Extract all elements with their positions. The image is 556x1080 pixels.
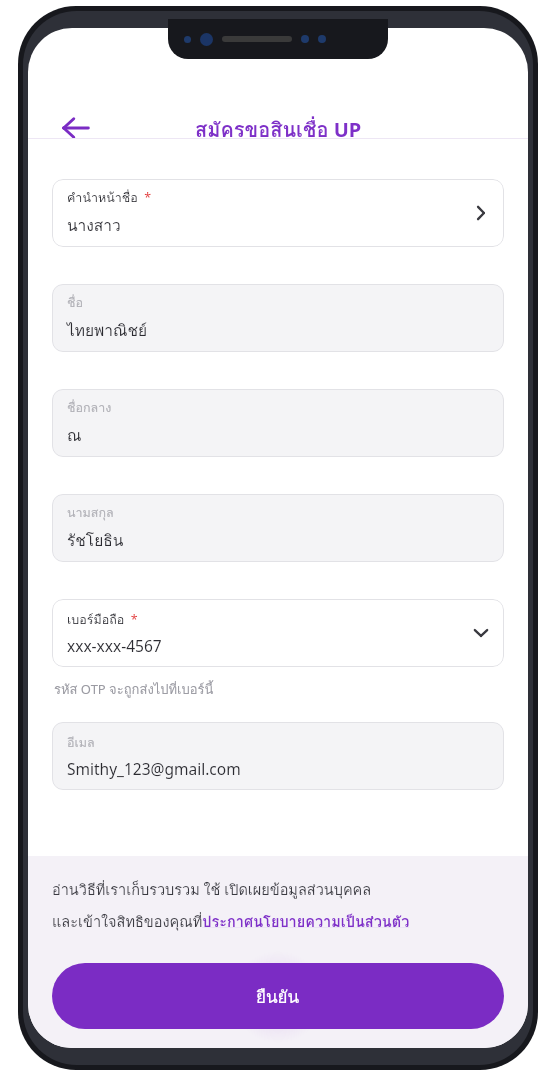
staticText: นามสกุล [67, 503, 114, 523]
staticText: รหัส OTP จะถูกส่งไปที่เบอร์นี้ [54, 679, 214, 700]
button[interactable]: นามสกุล [52, 494, 504, 562]
button[interactable]: ชื่อกลาง [52, 389, 504, 457]
button[interactable]: Back [54, 106, 98, 150]
staticText: คำนำหน้าชื่อ * [67, 188, 152, 208]
staticText: ณ [67, 423, 82, 448]
staticText: อีเมล [67, 733, 95, 753]
staticText: สมัครขอสินเชื่อ UP [195, 114, 362, 146]
button[interactable]: ยืนยัน [52, 963, 504, 1029]
button[interactable]: ชื่อ [52, 284, 504, 352]
staticText: xxx-xxx-4567 [67, 635, 162, 656]
staticText: เบอร์มือถือ * [67, 610, 138, 630]
staticText: ชื่อกลาง [67, 398, 112, 418]
button[interactable]: เบอร์มือถือ * [52, 599, 504, 667]
staticText: ยืนยัน [256, 983, 300, 1010]
staticText: รัชโยธิน [67, 528, 124, 553]
button[interactable]: อีเมล [52, 722, 504, 790]
staticText: Smithy_123@gmail.com [67, 758, 241, 779]
staticText: ชื่อ [67, 293, 83, 313]
staticText: ไทยพาณิชย์ [67, 318, 147, 343]
staticText: อ่านวิธีที่เราเก็บรวบรวม ใช้ เปิดเผยข้อม… [52, 878, 372, 901]
button[interactable]: คำนำหน้าชื่อ * [52, 179, 504, 247]
staticText: นางสาว [67, 213, 121, 238]
staticText: และเข้าใจสิทธิของคุณที่ประกาศนโยบายความเ… [52, 910, 410, 933]
